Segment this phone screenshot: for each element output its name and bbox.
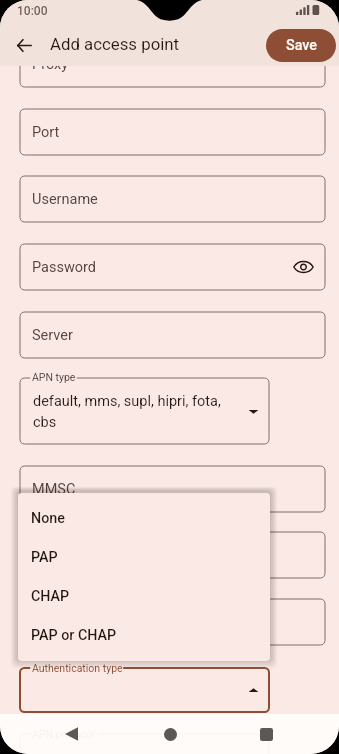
button[interactable]: MMSC xyxy=(20,466,325,512)
button[interactable] xyxy=(20,599,325,645)
staticText: Proxy xyxy=(32,56,69,73)
staticText: CHAP xyxy=(31,588,70,605)
staticText: Password xyxy=(32,259,97,276)
button[interactable]: Save xyxy=(266,29,336,62)
button[interactable]: Recent apps xyxy=(248,716,284,752)
staticText: APN type xyxy=(32,371,76,383)
button[interactable]: CHAP xyxy=(18,577,270,616)
button[interactable]: Username xyxy=(20,176,325,222)
staticText: Add access point xyxy=(50,34,180,54)
button[interactable]: Home xyxy=(152,716,188,752)
staticText: PAP or CHAP xyxy=(31,627,117,644)
button[interactable]: Back xyxy=(53,716,89,752)
staticText: None xyxy=(31,510,65,527)
staticText: Port xyxy=(32,124,60,141)
button[interactable]: None xyxy=(18,499,270,538)
button[interactable] xyxy=(20,734,269,754)
button[interactable]: default, mms, supl, hipri, fota, cbs xyxy=(20,378,269,444)
staticText: MMSC xyxy=(32,481,76,498)
staticText: APN protocol xyxy=(32,728,95,740)
button[interactable]: PAP or CHAP xyxy=(18,616,270,655)
staticText: Username xyxy=(32,191,98,208)
staticText: 10:00 xyxy=(17,4,48,18)
staticText: default, mms, supl, hipri, fota, cbs xyxy=(33,393,221,430)
staticText: Authentication type xyxy=(32,662,123,674)
button[interactable]: Navigate up xyxy=(5,27,42,64)
button[interactable]: PAP xyxy=(18,538,270,577)
staticText: PAP xyxy=(31,549,58,566)
button[interactable]: Port xyxy=(20,109,325,155)
button[interactable]: Server xyxy=(20,312,325,358)
button[interactable]: Password xyxy=(20,244,325,290)
button[interactable] xyxy=(20,532,325,578)
button[interactable] xyxy=(20,668,269,712)
staticText: Server xyxy=(32,327,73,344)
staticText: Save xyxy=(286,37,317,54)
button[interactable]: Proxy xyxy=(20,41,325,87)
